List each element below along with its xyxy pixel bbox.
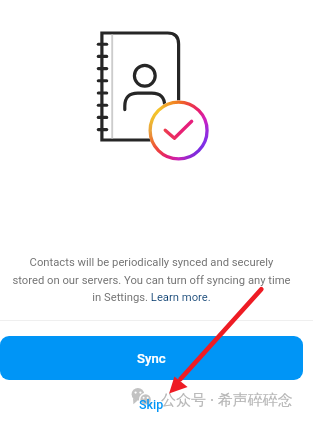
button[interactable]: Sync: [0, 336, 303, 380]
staticText: Contacts will be periodically synced and…: [0, 256, 303, 304]
staticText: 公众号 · 希声碎碎念: [161, 389, 293, 409]
staticText: Skip: [139, 397, 164, 412]
button[interactable]: Skip: [0, 386, 303, 422]
staticText: Sync: [137, 351, 166, 366]
